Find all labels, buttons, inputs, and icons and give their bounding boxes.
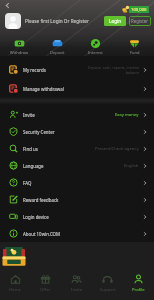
button[interactable]: Invite: [0, 106, 154, 123]
staticText: Language: [23, 163, 44, 169]
button[interactable]: Deposit: [38, 34, 76, 58]
staticText: Offer: [40, 287, 51, 293]
button[interactable]: Login: [104, 16, 126, 26]
button[interactable]: Back: [3, 1, 12, 10]
staticText: Deposit, cash, reports, income balance: [87, 65, 139, 75]
staticText: About 10win.COM: [23, 231, 60, 237]
button[interactable]: Security Center: [0, 123, 154, 140]
staticText: Invite: [23, 112, 35, 118]
button[interactable]: Register: [129, 16, 151, 26]
staticText: My records: [23, 67, 46, 73]
button[interactable]: Language: [0, 157, 154, 174]
button[interactable]: Manage withdrawal: [0, 79, 154, 98]
button[interactable]: My records: [0, 60, 154, 79]
button[interactable]: Home: [0, 274, 30, 296]
button[interactable]: Find us: [0, 140, 154, 157]
staticText: FAQ: [23, 180, 32, 186]
staticText: Login device: [23, 214, 49, 220]
staticText: Home: [9, 287, 21, 293]
staticText: Register: [131, 18, 149, 24]
staticText: Security Center: [23, 129, 55, 135]
staticText: Fund: [130, 50, 140, 55]
staticText: Manage withdrawal: [23, 86, 64, 92]
button[interactable]: Reward feedback: [0, 191, 154, 208]
staticText: Find us: [23, 146, 38, 152]
button[interactable]: Login device: [0, 208, 154, 225]
staticText: English: [124, 163, 139, 169]
staticText: Support: [100, 287, 116, 293]
staticText: 100,000: [131, 7, 147, 13]
button[interactable]: Profile: [123, 274, 154, 296]
staticText: Withdraw: [10, 50, 29, 55]
button[interactable]: Invite: [61, 274, 92, 296]
staticText: Deposit: [50, 50, 65, 55]
button[interactable]: Withdraw: [0, 34, 38, 58]
button[interactable]: Interest: [76, 34, 115, 58]
staticText: Login: [109, 18, 122, 24]
staticText: Invite: [71, 287, 83, 293]
button[interactable]: Support: [92, 274, 123, 296]
button[interactable]: About 10win.COM: [0, 225, 154, 242]
button[interactable]: FAQ: [0, 174, 154, 191]
button[interactable]: Fund: [115, 34, 154, 58]
staticText: Present/Check agency: [95, 146, 139, 152]
staticText: Easy money: [115, 112, 139, 118]
staticText: Profile: [132, 287, 145, 293]
button[interactable]: Offer: [30, 274, 61, 296]
staticText: Reward feedback: [23, 197, 59, 203]
staticText: Please first Login Or Register: [25, 18, 89, 24]
staticText: Interest: [88, 50, 103, 55]
